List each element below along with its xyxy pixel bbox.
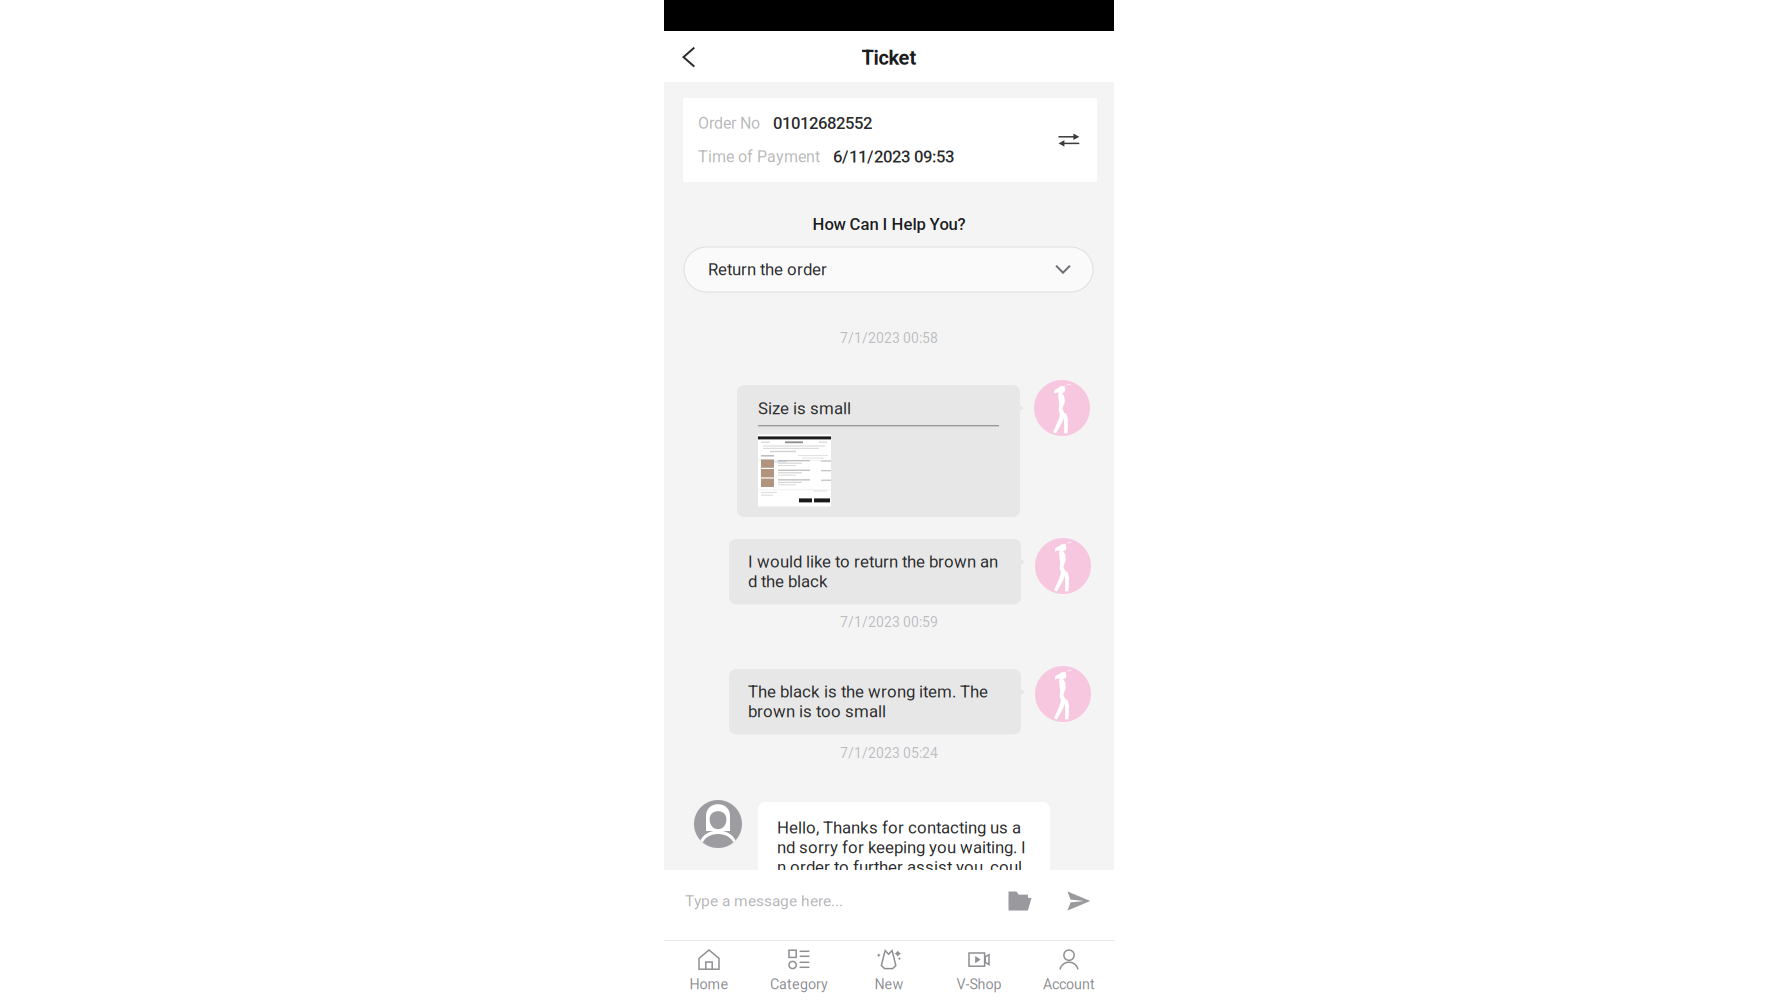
button[interactable]: Return the order [684,247,1093,292]
button[interactable]: Switch order [1058,132,1080,148]
staticText: Type a message here... [685,892,843,910]
button[interactable]: V-Shop [934,941,1024,1000]
staticText: Ticket [861,46,916,70]
staticText: Hello, Thanks for contacting us a nd sor… [777,818,1026,897]
button[interactable]: New [844,941,934,1000]
staticText: 7/1/2023 05:24 [840,745,938,761]
staticText: 7/1/2023 00:59 [840,614,938,630]
staticText: 6/11/2023 09:53 [833,147,954,166]
staticText: The black is the wrong item. The brown i… [748,682,988,721]
staticText: Time of Payment [698,147,820,166]
staticText: Home [689,976,728,993]
button[interactable]: Account [1024,941,1114,1000]
staticText: Category [770,976,828,993]
button[interactable]: Category [754,941,844,1000]
button[interactable]: Attach file [998,879,1042,923]
staticText: Account [1043,976,1095,993]
button[interactable]: Home [664,941,754,1000]
staticText: Order No [698,114,760,133]
button[interactable]: Back [667,35,711,79]
staticText: 7/1/2023 00:58 [840,330,938,346]
button[interactable]: Send [1057,879,1101,923]
staticText: Size is small [758,399,851,418]
staticText: New [874,976,903,993]
staticText: How Can I Help You? [812,214,965,234]
staticText: 01012682552 [773,113,872,133]
staticText: I would like to return the brown an d th… [748,552,998,591]
staticText: Return the order [708,260,827,279]
staticText: V-Shop [956,976,1001,993]
